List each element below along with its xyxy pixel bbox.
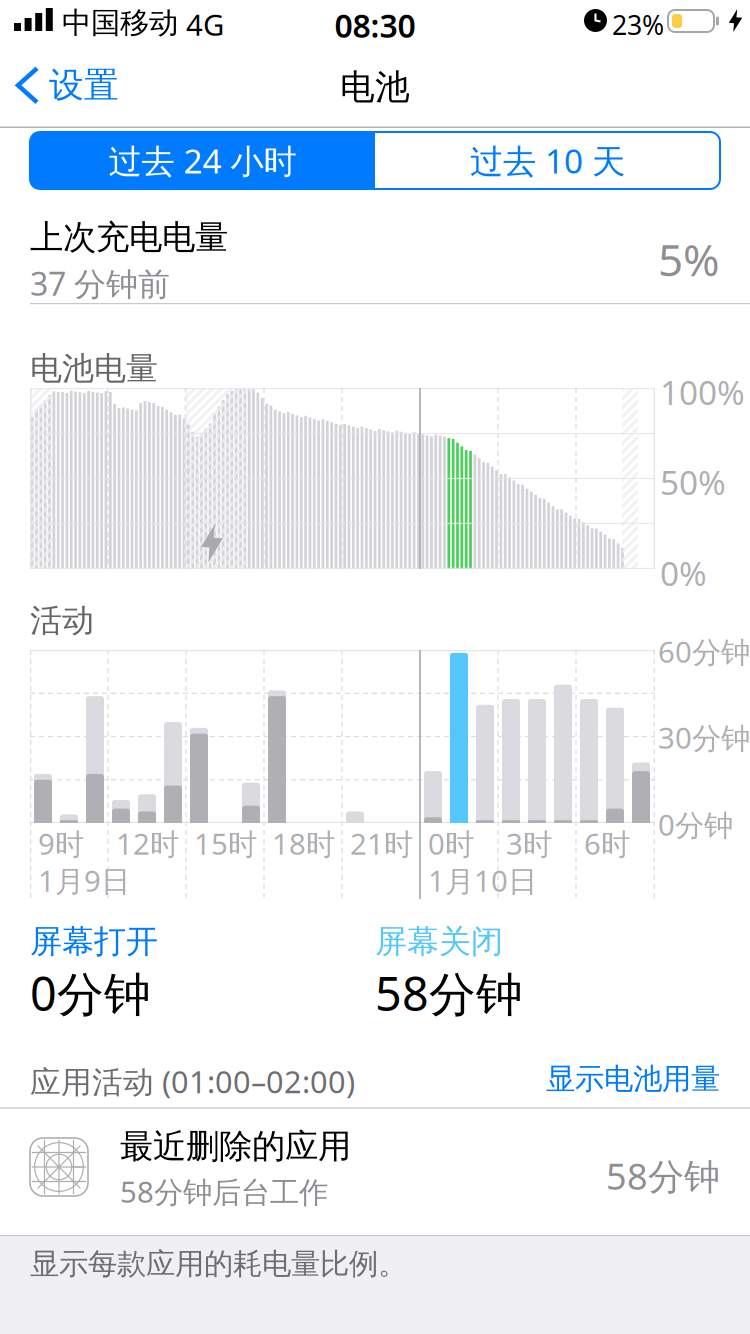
staticText: 3时 bbox=[506, 824, 552, 863]
button[interactable]: 过去 24 小时 bbox=[30, 132, 375, 189]
staticText: 58分钟后台工作 bbox=[120, 1172, 328, 1211]
staticText: 电池 bbox=[340, 66, 410, 109]
staticText: 18时 bbox=[272, 824, 335, 863]
staticText: 电池电量 bbox=[30, 349, 158, 388]
staticText: 过去 24 小时 bbox=[108, 138, 296, 183]
staticText: 显示电池用量 bbox=[546, 1061, 720, 1097]
staticText: 4G bbox=[186, 5, 224, 44]
button[interactable]: 设置 bbox=[18, 64, 119, 107]
staticText: 活动 bbox=[30, 601, 94, 640]
staticText: 0% bbox=[660, 551, 707, 595]
staticText: 0时 bbox=[428, 824, 474, 863]
button[interactable]: 最近删除的应用 bbox=[0, 1108, 750, 1235]
staticText: 最近删除的应用 bbox=[120, 1126, 351, 1167]
staticText: 0分钟 bbox=[658, 805, 733, 844]
staticText: 中国移动 bbox=[62, 5, 178, 41]
staticText: 37 分钟前 bbox=[30, 262, 170, 304]
button[interactable]: 过去 10 天 bbox=[375, 132, 720, 189]
staticText: 21时 bbox=[350, 824, 413, 863]
staticText: 58分钟 bbox=[606, 1152, 720, 1200]
staticText: 屏幕打开 bbox=[30, 922, 158, 961]
staticText: 9时 bbox=[38, 824, 84, 863]
staticText: 显示每款应用的耗电量比例。 bbox=[30, 1246, 407, 1282]
staticText: 5% bbox=[658, 230, 720, 288]
staticText: 设置 bbox=[49, 64, 119, 107]
staticText: 0分钟 bbox=[30, 962, 151, 1024]
staticText: 6时 bbox=[584, 824, 630, 863]
button[interactable]: 显示电池用量 bbox=[546, 1061, 720, 1097]
staticText: 100% bbox=[660, 370, 745, 414]
staticText: 60分钟 bbox=[658, 632, 750, 671]
staticText: 12时 bbox=[116, 824, 179, 863]
staticText: 上次充电电量 bbox=[30, 217, 228, 258]
staticText: 屏幕关闭 bbox=[375, 922, 503, 961]
staticText: 50% bbox=[660, 460, 726, 504]
staticText: 15时 bbox=[194, 824, 257, 863]
staticText: 应用活动 (01:00–02:00) bbox=[30, 1061, 355, 1102]
staticText: 过去 10 天 bbox=[470, 138, 625, 183]
staticText: 58分钟 bbox=[375, 962, 523, 1024]
staticText: 1月9日 bbox=[38, 861, 130, 900]
staticText: 1月10日 bbox=[428, 861, 537, 900]
staticText: 30分钟 bbox=[658, 718, 750, 757]
staticText: 08:30 bbox=[334, 4, 415, 46]
staticText: 23% bbox=[612, 7, 664, 42]
